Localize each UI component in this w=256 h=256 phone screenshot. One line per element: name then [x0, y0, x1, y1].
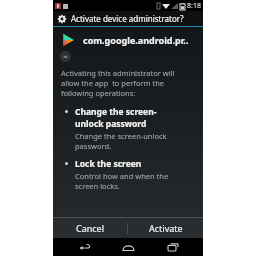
- staticText: Activate device administrator?: [71, 13, 184, 24]
- button[interactable]: Home: [114, 238, 142, 256]
- staticText: Change the screen-: [75, 106, 157, 118]
- staticText: password.: [75, 141, 112, 151]
- staticText: Activating this administrator will: [61, 68, 175, 78]
- button[interactable]: Collapse details: [60, 51, 71, 62]
- staticText: Activate: [149, 222, 183, 234]
- button[interactable]: Recent apps: [159, 238, 187, 256]
- staticText: com.google.android.pr..: [83, 34, 189, 46]
- button[interactable]: Back: [70, 238, 98, 256]
- button[interactable]: Activate: [128, 218, 203, 238]
- staticText: unlock password: [75, 118, 147, 130]
- staticText: Change the screen-unlock: [75, 131, 167, 141]
- staticText: screen locks.: [75, 181, 120, 191]
- staticText: 8:18: [187, 1, 201, 11]
- staticText: following operations:: [61, 88, 136, 98]
- button[interactable]: Cancel: [53, 218, 127, 238]
- staticText: Control how and when the: [75, 171, 169, 181]
- staticText: Lock the screen: [75, 158, 142, 170]
- staticText: Cancel: [76, 222, 105, 234]
- staticText: allow the app to perform the: [61, 78, 165, 88]
